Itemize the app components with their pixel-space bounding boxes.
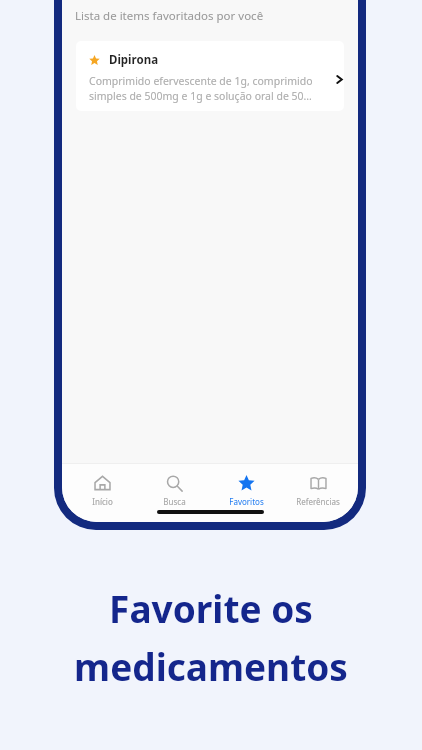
button[interactable]: Busca	[142, 473, 206, 509]
other: Referências	[310, 475, 327, 492]
button[interactable]: Referências	[286, 473, 350, 509]
other: Abrir	[335, 75, 344, 84]
staticText: Favorite os	[109, 583, 313, 633]
staticText: Referências	[296, 496, 340, 507]
staticText: Lista de items favoritados por você	[75, 8, 264, 24]
staticText: Dipirona	[109, 52, 159, 68]
staticText: Busca	[163, 496, 186, 507]
button[interactable]: Favoritos	[214, 473, 278, 509]
other: Busca	[166, 475, 183, 492]
staticText: Favoritos	[229, 496, 264, 507]
button[interactable]: Dipirona	[76, 41, 344, 111]
button[interactable]: Início	[70, 473, 134, 509]
staticText: Comprimido efervescente de 1g, comprimid…	[89, 74, 330, 103]
staticText: Início	[92, 496, 113, 507]
other: Início	[94, 475, 111, 492]
staticText: medicamentos	[74, 641, 348, 691]
other: Favoritos	[238, 475, 255, 492]
